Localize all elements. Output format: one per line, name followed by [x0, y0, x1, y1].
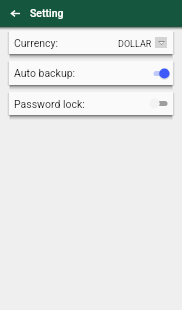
button[interactable]: Choose currency [155, 37, 167, 48]
button[interactable]: Currency: [9, 31, 173, 54]
button[interactable]: Auto backup toggle [153, 68, 170, 79]
staticText: Currency: [14, 37, 59, 49]
staticText: Password lock: [14, 98, 85, 110]
button[interactable]: Password lock toggle [149, 98, 168, 109]
button[interactable]: Back [5, 3, 25, 23]
staticText: Setting [30, 7, 64, 19]
button[interactable]: Auto backup: [9, 61, 173, 85]
button[interactable]: Password lock: [9, 92, 173, 115]
staticText: DOLLAR [118, 39, 152, 50]
staticText: Auto backup: [14, 67, 76, 79]
